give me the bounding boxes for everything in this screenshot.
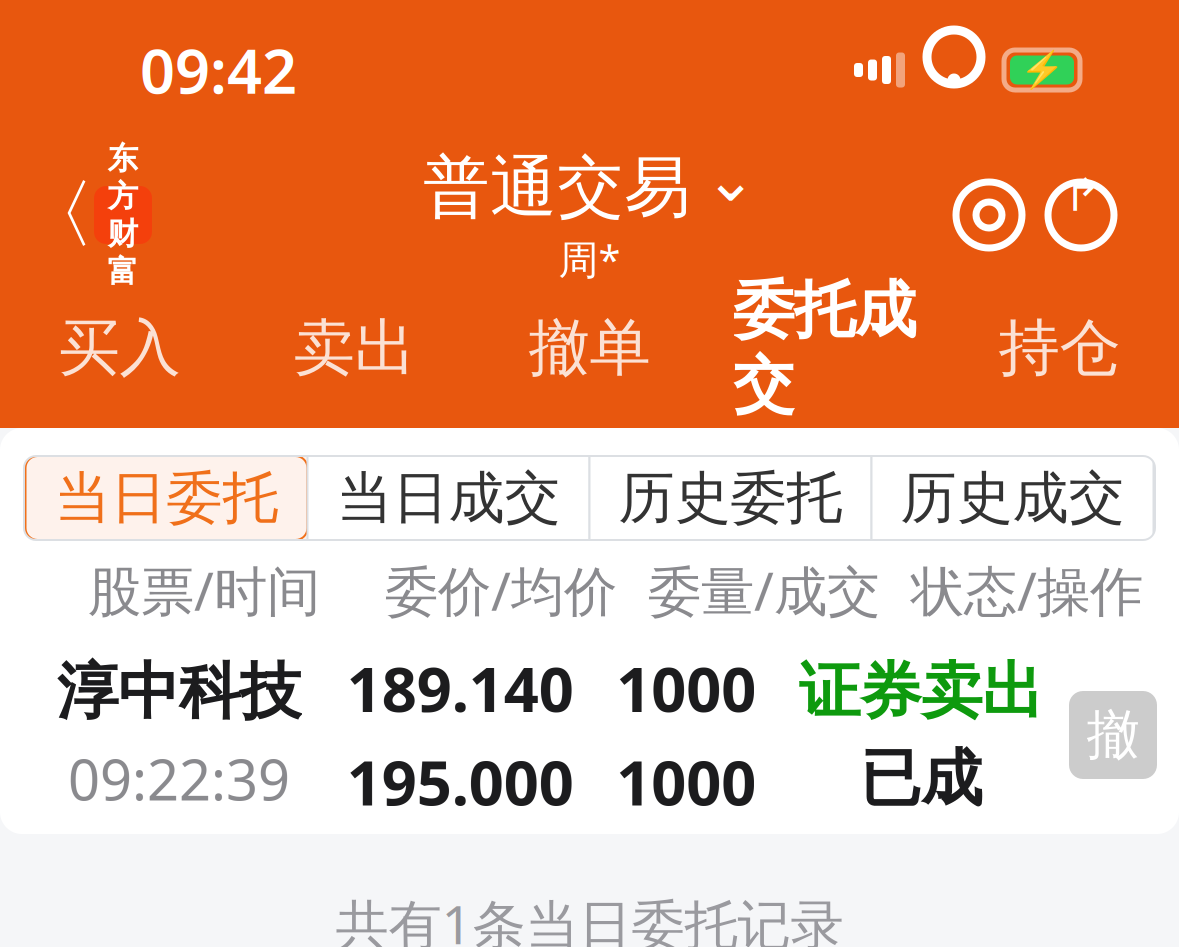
staticText: 买入 <box>58 310 180 386</box>
staticText: 共有1条当日委托记录 <box>335 888 843 947</box>
staticText: 已成 <box>860 741 982 816</box>
staticText: 撤 <box>1086 702 1139 768</box>
staticText: 1000 <box>616 741 756 822</box>
staticText: 持仓 <box>998 310 1120 386</box>
button[interactable]: 持仓 <box>942 290 1177 428</box>
staticText: 09:42 <box>140 29 297 111</box>
staticText: 189.140 <box>347 648 574 729</box>
staticText: 股票/时间 <box>88 555 320 625</box>
button[interactable]: 卖出 <box>237 290 472 428</box>
staticText: 东方 财富 <box>107 140 138 290</box>
button[interactable]: 设置 <box>943 169 1035 261</box>
staticText: 周* <box>558 232 620 285</box>
button[interactable]: 撤单 <box>1069 691 1157 779</box>
staticText: 撤单 <box>528 310 650 386</box>
staticText: 09:22:39 <box>68 741 290 816</box>
staticText: 淳中科技 <box>57 654 301 729</box>
staticText: 当日委托 <box>54 464 278 532</box>
button[interactable]: 东方财富 <box>94 186 152 244</box>
staticText: ↱ <box>1064 169 1102 221</box>
button[interactable]: 淳中科技 <box>0 640 1179 830</box>
button[interactable]: 当日委托 <box>25 456 307 540</box>
staticText: 委托成交 <box>733 273 916 423</box>
staticText: 委价/均价 <box>385 555 617 625</box>
staticText: 委量/成交 <box>648 555 880 625</box>
staticText: 历史委托 <box>618 464 842 532</box>
staticText: 证券卖出 <box>799 654 1043 729</box>
staticText: ⌄ <box>705 145 756 214</box>
button[interactable]: 历史委托 <box>589 456 871 540</box>
button[interactable]: 刷新 <box>1035 169 1127 261</box>
button[interactable]: 返回 <box>22 170 94 260</box>
staticText: 普通交易 <box>423 146 691 228</box>
staticText: 历史成交 <box>900 464 1124 532</box>
staticText: 状态/操作 <box>911 555 1143 625</box>
button[interactable]: 买入 <box>2 290 237 428</box>
staticText: ⚡ <box>1019 49 1064 90</box>
button[interactable]: 撤单 <box>472 290 707 428</box>
staticText: 当日成交 <box>336 464 560 532</box>
staticText: 卖出 <box>293 310 415 386</box>
button[interactable]: 历史成交 <box>871 456 1153 540</box>
button[interactable]: 当日成交 <box>307 456 589 540</box>
staticText: 〈 <box>20 169 95 261</box>
staticText: 195.000 <box>347 741 574 822</box>
button[interactable]: 普通交易 <box>413 145 766 285</box>
button[interactable]: 委托成交 <box>707 290 942 428</box>
staticText: 1000 <box>616 648 756 729</box>
